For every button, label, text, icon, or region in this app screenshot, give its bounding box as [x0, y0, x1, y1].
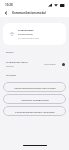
staticText: Ethernet — [6, 65, 14, 68]
button[interactable]: Kommunikationsmodul abmelden — [3, 106, 66, 116]
staticText: Seriennummer — [18, 33, 33, 36]
staticText: SN 1234 5678 9012 3456 — [18, 37, 39, 39]
staticText: OPTIONEN — [6, 74, 17, 77]
staticText: Kommunikationsmodul abmelden — [15, 110, 55, 113]
staticText: Netzwerk konfigurieren — [21, 98, 49, 101]
staticText: 10:28 — [5, 3, 13, 7]
staticText: Kommunikationsmodul neu starten — [14, 86, 56, 89]
staticText: Verbunden — [44, 63, 56, 66]
staticText: Kommunikationsmodul — [12, 11, 46, 15]
staticText: Verbindungs-Status — [6, 61, 28, 64]
button[interactable]: Produktname — [3, 23, 66, 45]
button[interactable]: Kommunikationsmodul neu starten — [3, 82, 66, 92]
staticText: DETAILS — [6, 51, 14, 54]
staticText: Produktname — [18, 29, 34, 32]
button[interactable]: Verbindungs-Status — [0, 61, 69, 68]
button[interactable]: Netzwerk konfigurieren — [3, 94, 66, 104]
button[interactable]: Zurück — [0, 9, 12, 17]
